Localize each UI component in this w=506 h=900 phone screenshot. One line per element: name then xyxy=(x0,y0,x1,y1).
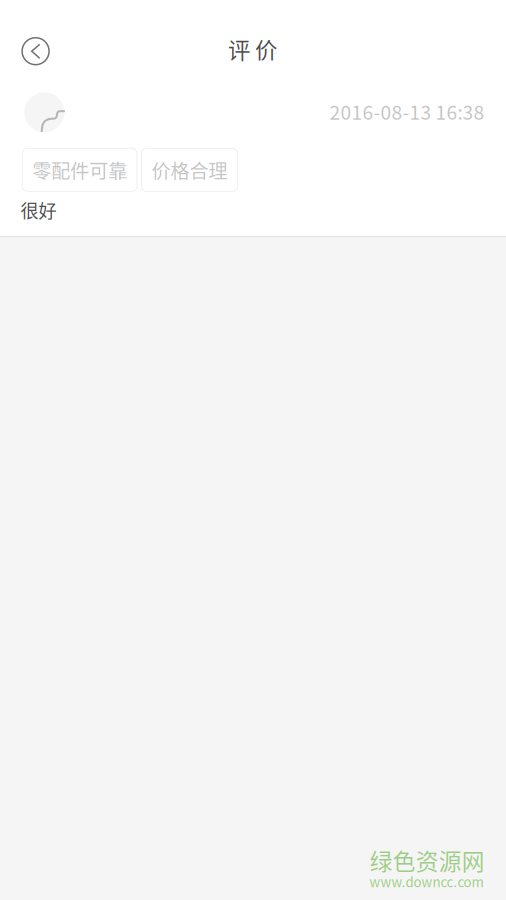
button[interactable]: Back xyxy=(11,26,61,76)
staticText: 绿色资源网 xyxy=(370,844,485,876)
staticText: 很好 xyxy=(21,197,57,223)
button[interactable]: 零配件可靠 xyxy=(22,148,137,191)
staticText: 价格合理 xyxy=(151,156,227,184)
staticText: 评 价 xyxy=(228,33,277,65)
staticText: www.downcc.com xyxy=(369,872,483,891)
staticText: 零配件可靠 xyxy=(32,156,127,184)
button[interactable]: 价格合理 xyxy=(141,148,237,191)
staticText: 2016-08-13 16:38 xyxy=(329,98,484,125)
